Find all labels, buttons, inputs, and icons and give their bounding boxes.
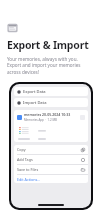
staticText: Export Data: [23, 89, 46, 94]
staticText: Memories App · 1.2 MB: [24, 118, 57, 122]
staticText: Your memories, always with you. Export a…: [7, 56, 81, 76]
button[interactable]: Add Tags: [14, 155, 88, 164]
button[interactable]: Preview list: [17, 125, 31, 137]
staticText: Copy: [17, 147, 81, 152]
button[interactable]: Save to Files: [14, 165, 88, 174]
staticText: Save to Files: [17, 167, 81, 172]
button[interactable]: Export Data: [14, 87, 88, 96]
button[interactable]: Preview document: [35, 125, 49, 137]
staticText: Add Tags: [17, 157, 81, 162]
staticText: Export & Import: [7, 38, 89, 52]
staticText: Edit Actions…: [17, 177, 41, 182]
button[interactable]: Edit Actions…: [14, 175, 88, 183]
button[interactable]: memories 20-05-2024 10:33: [14, 110, 88, 142]
button[interactable]: Copy: [14, 145, 88, 154]
staticText: memories 20-05-2024 10:33: [24, 112, 71, 117]
button[interactable]: Import Data: [14, 98, 88, 107]
staticText: Import Data: [23, 100, 47, 105]
